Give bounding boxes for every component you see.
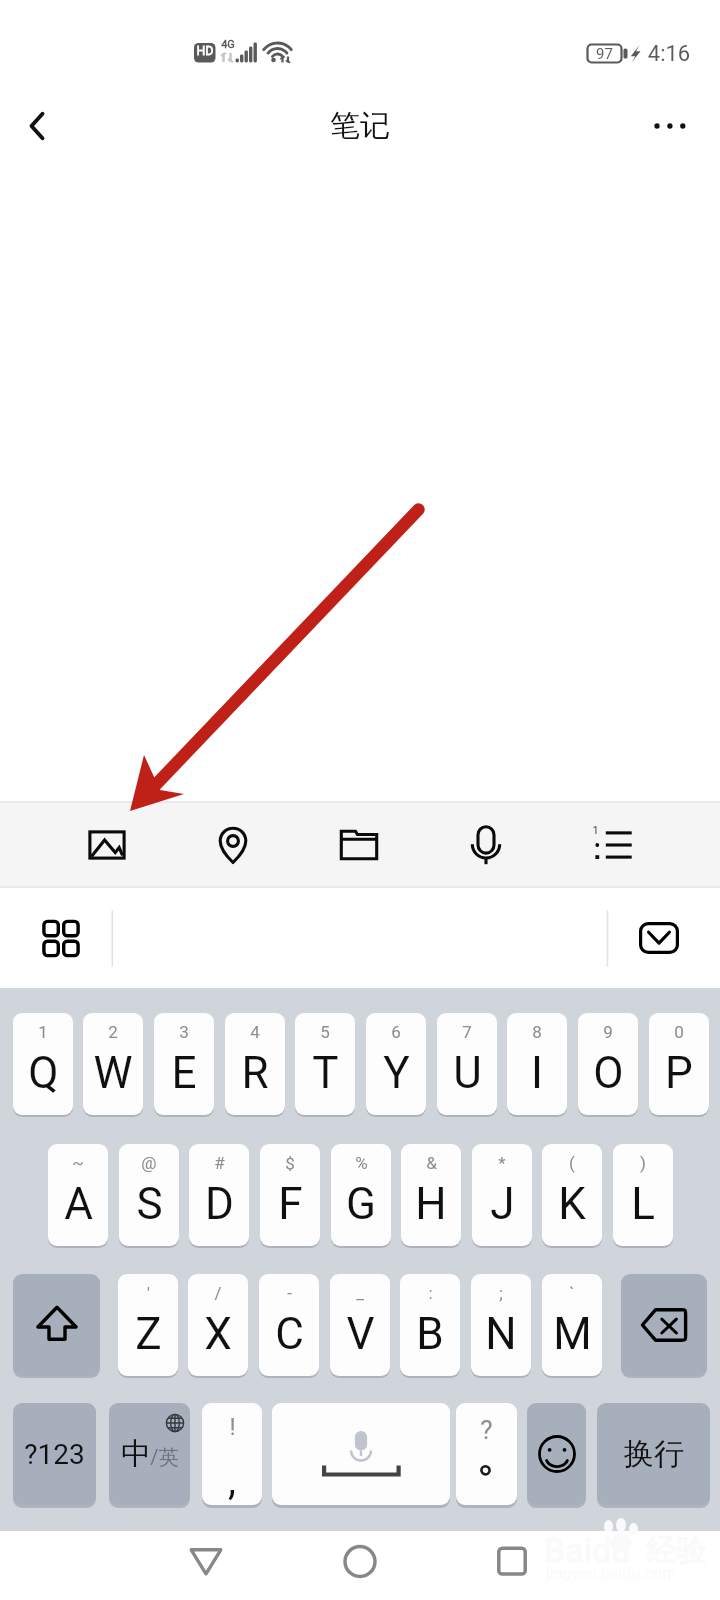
- button[interactable]: Home: [325, 1531, 395, 1600]
- button[interactable]: ~: [48, 1144, 108, 1246]
- staticText: 0: [674, 1022, 684, 1042]
- button[interactable]: Keyboard layout: [14, 888, 108, 988]
- button[interactable]: More options: [647, 82, 717, 170]
- staticText: 97: [589, 45, 620, 63]
- staticText: E: [171, 1047, 197, 1099]
- staticText: /: [214, 1283, 222, 1303]
- button[interactable]: *: [472, 1144, 532, 1246]
- staticText: Z: [135, 1308, 162, 1360]
- staticText: 4:16: [646, 41, 692, 67]
- button[interactable]: Back: [171, 1531, 241, 1600]
- button[interactable]: Voice input: [441, 802, 531, 888]
- button[interactable]: 3: [154, 1013, 214, 1115]
- button[interactable]: /: [188, 1274, 248, 1376]
- staticText: H: [415, 1178, 447, 1230]
- button[interactable]: Emoji: [527, 1403, 586, 1505]
- button[interactable]: &: [401, 1144, 461, 1246]
- staticText: /英: [150, 1445, 179, 1470]
- staticText: 3: [179, 1022, 189, 1042]
- staticText: !: [229, 1413, 236, 1441]
- button[interactable]: :: [400, 1274, 460, 1376]
- button[interactable]: `: [542, 1274, 602, 1376]
- staticText: `: [569, 1283, 575, 1303]
- staticText: B: [416, 1308, 444, 1360]
- staticText: ?123: [24, 1438, 85, 1471]
- staticText: P: [665, 1047, 693, 1099]
- staticText: C: [275, 1308, 304, 1360]
- staticText: D: [205, 1178, 234, 1230]
- staticText: A: [64, 1178, 93, 1230]
- staticText: F: [278, 1178, 303, 1230]
- staticText: 5: [320, 1022, 330, 1042]
- button[interactable]: Period: [456, 1403, 517, 1505]
- button[interactable]: Backspace: [621, 1274, 707, 1376]
- button[interactable]: Add location: [188, 802, 278, 888]
- button[interactable]: 7: [437, 1013, 497, 1115]
- button[interactable]: (: [542, 1144, 602, 1246]
- staticText: #: [214, 1153, 225, 1173]
- staticText: *: [498, 1153, 506, 1173]
- staticText: J: [490, 1178, 515, 1230]
- button[interactable]: ): [613, 1144, 673, 1246]
- staticText: @: [141, 1153, 157, 1173]
- staticText: T: [312, 1047, 339, 1099]
- staticText: 7: [462, 1022, 472, 1042]
- button[interactable]: Hide keyboard: [619, 888, 699, 988]
- staticText: Y: [383, 1047, 410, 1099]
- staticText: ?: [480, 1415, 493, 1445]
- button[interactable]: 8: [507, 1013, 567, 1115]
- staticText: X: [204, 1308, 232, 1360]
- staticText: ~: [72, 1153, 84, 1173]
- button[interactable]: ': [118, 1274, 178, 1376]
- button[interactable]: !: [202, 1403, 262, 1505]
- staticText: ): [640, 1153, 646, 1173]
- staticText: (: [569, 1153, 575, 1173]
- button[interactable]: Folder: [314, 802, 404, 888]
- staticText: :: [428, 1283, 433, 1303]
- staticText: ,: [228, 1457, 236, 1504]
- button[interactable]: $: [260, 1144, 320, 1246]
- button[interactable]: -: [259, 1274, 319, 1376]
- button[interactable]: 2: [83, 1013, 143, 1115]
- staticText: 8: [532, 1022, 542, 1042]
- button[interactable]: Recents: [477, 1531, 547, 1600]
- button[interactable]: 1: [13, 1013, 73, 1115]
- button[interactable]: 6: [366, 1013, 426, 1115]
- button[interactable]: Switch Chinese English: [109, 1403, 190, 1505]
- button[interactable]: @: [119, 1144, 179, 1246]
- button[interactable]: 4: [225, 1013, 285, 1115]
- button[interactable]: _: [330, 1274, 390, 1376]
- staticText: Q: [28, 1047, 59, 1099]
- button[interactable]: 5: [295, 1013, 355, 1115]
- button[interactable]: Shift: [13, 1274, 100, 1376]
- staticText: I: [531, 1047, 543, 1099]
- button[interactable]: #: [189, 1144, 249, 1246]
- button[interactable]: 9: [578, 1013, 638, 1115]
- button[interactable]: 0: [649, 1013, 709, 1115]
- staticText: W: [93, 1047, 133, 1099]
- staticText: L: [631, 1178, 655, 1230]
- staticText: ;: [499, 1283, 503, 1303]
- staticText: _: [356, 1283, 364, 1303]
- button[interactable]: %: [331, 1144, 391, 1246]
- button[interactable]: Back: [2, 82, 72, 170]
- staticText: U: [453, 1047, 482, 1099]
- staticText: ': [147, 1283, 150, 1303]
- staticText: 中: [121, 1435, 151, 1473]
- button[interactable]: ;: [471, 1274, 531, 1376]
- staticText: 换行: [624, 1435, 684, 1473]
- staticText: S: [136, 1178, 163, 1230]
- button[interactable]: List: [568, 802, 658, 888]
- button[interactable]: Space: [272, 1403, 450, 1505]
- staticText: 6: [391, 1022, 401, 1042]
- staticText: $: [285, 1153, 295, 1173]
- staticText: K: [558, 1178, 586, 1230]
- staticText: V: [346, 1308, 375, 1360]
- button[interactable]: Insert image: [62, 802, 152, 888]
- button[interactable]: 换行: [597, 1403, 710, 1505]
- staticText: 笔记: [330, 107, 390, 145]
- staticText: R: [241, 1047, 269, 1099]
- button[interactable]: ?123: [13, 1403, 96, 1505]
- staticText: %: [355, 1153, 368, 1173]
